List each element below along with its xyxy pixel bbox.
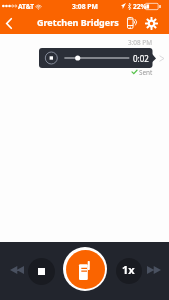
- button[interactable]: Message details: [155, 48, 167, 68]
- button[interactable]: 0:02: [39, 48, 156, 68]
- button[interactable]: 1x: [116, 258, 142, 284]
- staticText: 0:02: [133, 53, 149, 64]
- staticText: Gretchen Bridgers: [37, 16, 119, 28]
- staticText: 3:08 PM: [128, 38, 153, 47]
- staticText: Sent: [139, 68, 153, 77]
- button[interactable]: Stop: [28, 258, 55, 285]
- staticText: 3:08 PM: [72, 2, 98, 11]
- button[interactable]: Back: [0, 12, 17, 34]
- button[interactable]: Voice call: [122, 12, 141, 34]
- staticText: AT&T: [18, 2, 35, 11]
- button[interactable]: Fast forward: [142, 258, 166, 282]
- button[interactable]: Push to talk: [63, 247, 107, 291]
- staticText: 22%: [133, 2, 147, 11]
- staticText: 1x: [122, 262, 135, 277]
- button[interactable]: Settings: [142, 12, 161, 34]
- button[interactable]: Rewind: [5, 258, 29, 282]
